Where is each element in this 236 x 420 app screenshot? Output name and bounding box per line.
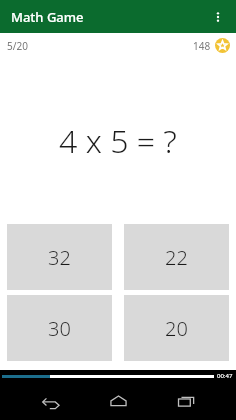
- button[interactable]: 32: [7, 224, 112, 290]
- staticText: 30: [48, 315, 71, 342]
- staticText: 00:47: [217, 372, 233, 380]
- button[interactable]: More options: [204, 3, 232, 31]
- staticText: 22: [165, 244, 188, 271]
- button[interactable]: Home: [101, 384, 135, 418]
- button[interactable]: 30: [7, 295, 112, 361]
- button[interactable]: Recents: [169, 384, 203, 418]
- staticText: 148: [193, 39, 211, 53]
- staticText: 32: [48, 244, 71, 271]
- staticText: 20: [165, 315, 188, 342]
- staticText: 5/20: [7, 39, 28, 53]
- button[interactable]: Back: [34, 384, 68, 418]
- button[interactable]: 20: [124, 295, 229, 361]
- staticText: Math Game: [11, 8, 84, 26]
- button[interactable]: 22: [124, 224, 229, 290]
- staticText: 4 x 5 = ?: [59, 119, 177, 163]
